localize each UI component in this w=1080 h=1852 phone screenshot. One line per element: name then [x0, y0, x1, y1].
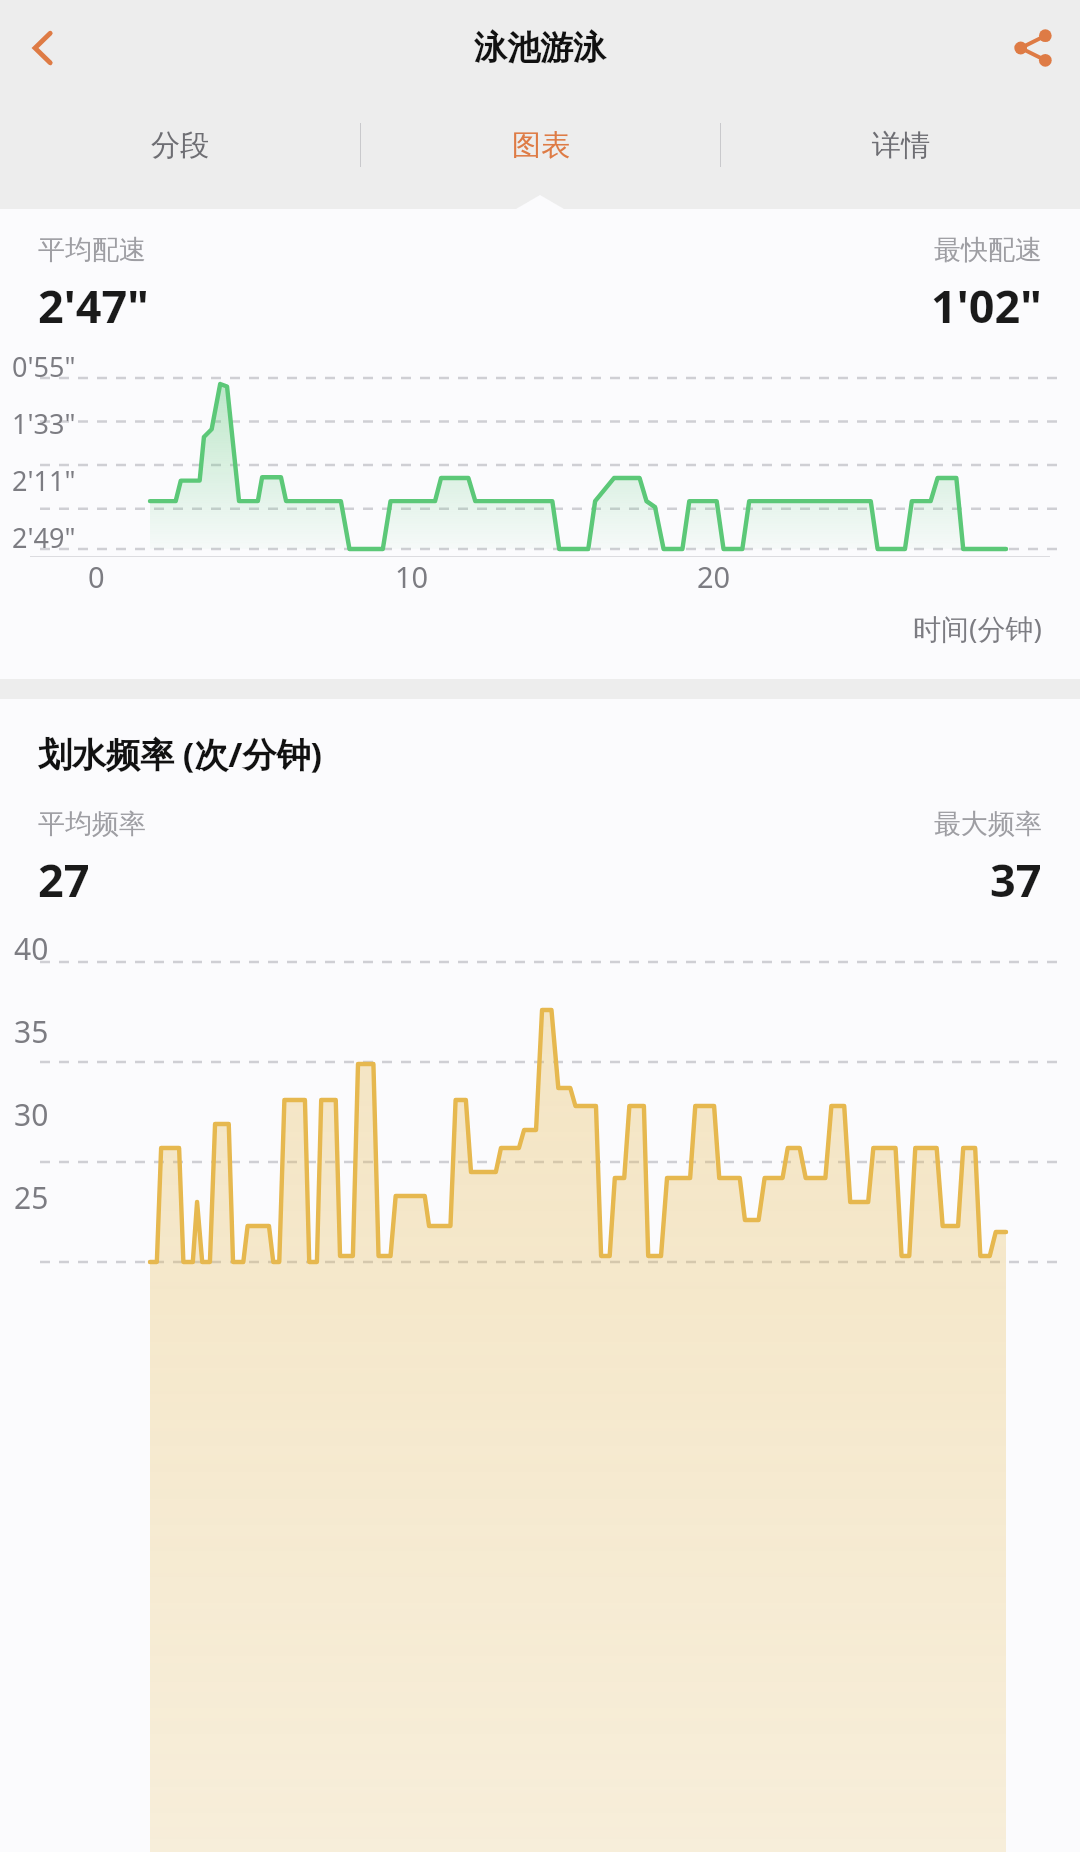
- staticText: 40: [14, 928, 49, 969]
- button[interactable]: 分段: [0, 95, 360, 195]
- button[interactable]: Share: [996, 11, 1070, 85]
- staticText: 1'02": [931, 275, 1042, 336]
- staticText: 30: [14, 1094, 49, 1135]
- staticText: 2'47": [38, 275, 149, 336]
- staticText: 2'11": [12, 462, 76, 499]
- staticText: 0'55": [12, 348, 76, 385]
- staticText: 2'49": [12, 519, 76, 556]
- staticText: 0: [88, 557, 105, 596]
- button[interactable]: Back: [6, 11, 80, 85]
- staticText: 时间(分钟): [913, 609, 1042, 647]
- staticText: 详情: [872, 127, 930, 164]
- staticText: 27: [38, 849, 90, 910]
- button[interactable]: 详情: [721, 95, 1080, 195]
- staticText: 平均频率: [38, 807, 146, 841]
- staticText: 10: [395, 557, 429, 596]
- staticText: 最大频率: [934, 807, 1042, 841]
- staticText: 25: [14, 1177, 49, 1218]
- staticText: 1'33": [12, 405, 76, 442]
- staticText: 20: [697, 557, 731, 596]
- staticText: 分段: [151, 127, 209, 164]
- staticText: 35: [14, 1011, 49, 1052]
- button[interactable]: 图表: [361, 95, 720, 195]
- staticText: 泳池游泳: [474, 27, 606, 69]
- staticText: 平均配速: [38, 233, 146, 267]
- staticText: 37: [990, 849, 1042, 910]
- staticText: 划水频率 (次/分钟): [38, 731, 323, 777]
- staticText: 图表: [512, 127, 570, 164]
- staticText: 最快配速: [934, 233, 1042, 267]
